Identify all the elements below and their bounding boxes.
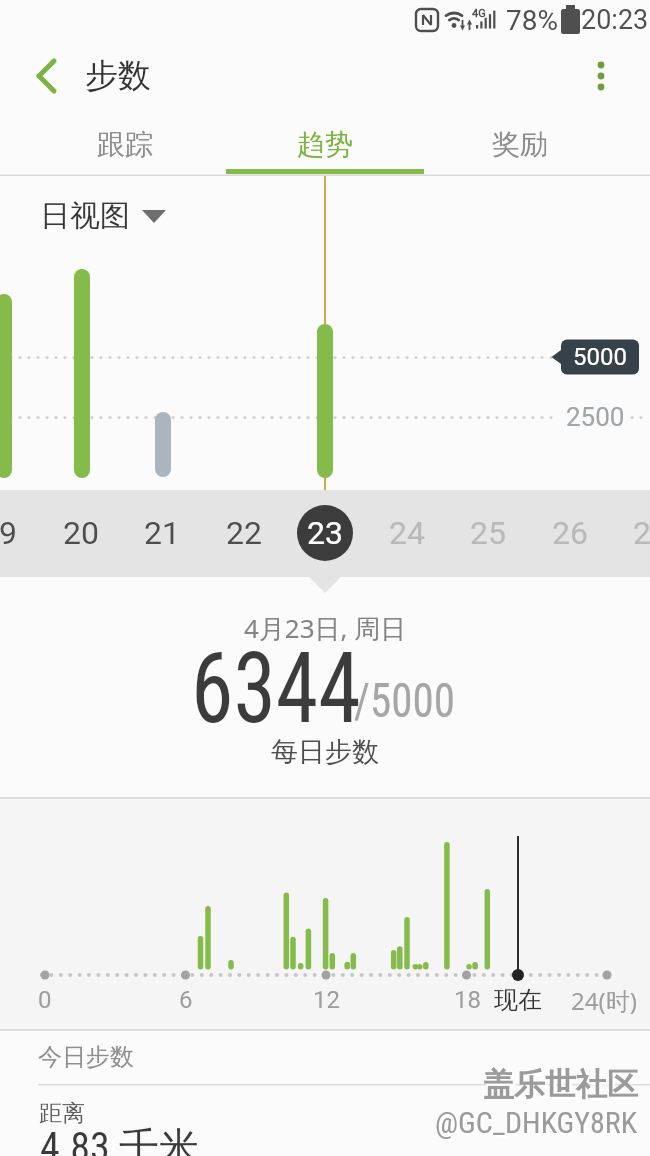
staticText: 25 bbox=[470, 514, 506, 552]
staticText: 6344 bbox=[191, 631, 361, 746]
staticText: 每日步数 bbox=[271, 735, 379, 769]
staticText: 12 bbox=[313, 986, 340, 1014]
staticText: 24(时) bbox=[571, 984, 637, 1017]
staticText: 趋势 bbox=[297, 127, 353, 162]
staticText: 78% bbox=[506, 4, 558, 37]
staticText: 日视图 bbox=[40, 197, 130, 235]
staticText: 4G bbox=[472, 7, 486, 20]
staticText: 今日步数 bbox=[38, 1042, 134, 1072]
button[interactable]: 20 bbox=[46, 493, 116, 573]
button[interactable]: 趋势 bbox=[230, 114, 420, 174]
staticText: 6 bbox=[179, 986, 193, 1014]
staticText: 4月23日, 周日 bbox=[244, 610, 407, 646]
button[interactable] bbox=[580, 52, 624, 100]
staticText: 距离 bbox=[39, 1099, 85, 1128]
staticText: @GC_DHKGY8RK bbox=[435, 1105, 638, 1140]
button[interactable]: 22 bbox=[209, 493, 279, 573]
button[interactable]: 23 bbox=[290, 493, 360, 573]
staticText: 24 bbox=[389, 514, 425, 552]
staticText: 23 bbox=[307, 514, 343, 552]
staticText: 21 bbox=[144, 514, 180, 552]
button[interactable]: 距离 bbox=[39, 1093, 639, 1133]
staticText: 20 bbox=[63, 514, 99, 552]
button[interactable]: 日视图 bbox=[40, 191, 180, 241]
button[interactable]: 25 bbox=[453, 493, 523, 573]
button[interactable]: 24 bbox=[372, 493, 442, 573]
staticText: 步数 bbox=[85, 55, 151, 97]
staticText: 跟踪 bbox=[97, 127, 153, 162]
staticText: 盖乐世社区 bbox=[483, 1065, 638, 1104]
staticText: 27 bbox=[633, 514, 650, 552]
staticText: 20:23 bbox=[581, 4, 649, 36]
staticText: /5000 bbox=[354, 672, 455, 727]
button[interactable]: 21 bbox=[127, 493, 197, 573]
staticText: 22 bbox=[226, 514, 262, 552]
button[interactable]: 26 bbox=[535, 493, 605, 573]
staticText: 2500 bbox=[566, 402, 625, 432]
staticText: 奖励 bbox=[492, 127, 548, 162]
staticText: 4.83 千米 bbox=[40, 1122, 199, 1156]
button[interactable]: 奖励 bbox=[425, 114, 615, 174]
staticText: 0 bbox=[38, 986, 52, 1014]
staticText: 现在 bbox=[494, 985, 542, 1015]
button[interactable]: 跟踪 bbox=[30, 114, 220, 174]
staticText: 19 bbox=[0, 514, 17, 552]
staticText: 18 bbox=[454, 986, 481, 1014]
button[interactable] bbox=[20, 56, 70, 96]
staticText: 26 bbox=[552, 514, 588, 552]
staticText: 5000 bbox=[573, 343, 627, 371]
